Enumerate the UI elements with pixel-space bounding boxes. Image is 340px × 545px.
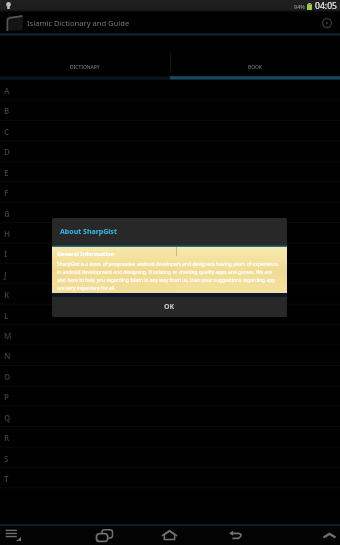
staticText: G [4, 208, 10, 219]
staticText: F [4, 187, 9, 198]
button[interactable]: DICTIONARY [0, 36, 170, 80]
button[interactable]: BOOK [170, 36, 340, 80]
button[interactable]: OK [144, 299, 195, 315]
staticText: General Information [57, 250, 115, 258]
button[interactable]: Q [0, 407, 340, 427]
staticText: A [4, 85, 10, 96]
staticText: BOOK [248, 64, 262, 71]
staticText: M [4, 330, 12, 341]
button[interactable]: I [0, 243, 340, 263]
button[interactable]: S [0, 448, 340, 468]
staticText: C [4, 126, 10, 137]
staticText: K [4, 289, 10, 300]
button[interactable]: About [320, 16, 333, 29]
staticText: N [4, 350, 11, 361]
staticText: S [4, 453, 9, 464]
staticText: T [4, 473, 9, 484]
button[interactable]: Home [160, 525, 179, 544]
staticText: OK [164, 302, 175, 312]
staticText: J [4, 269, 7, 280]
staticText: O [4, 371, 11, 382]
staticText: 94% [294, 3, 305, 10]
staticText: Q [4, 412, 11, 423]
button[interactable]: Expand [321, 527, 338, 544]
staticText: L [4, 310, 9, 321]
staticText: R [4, 432, 10, 443]
staticText: Islamic Dictionary and Guide [27, 18, 130, 28]
staticText: P [4, 391, 9, 402]
staticText: I [4, 248, 8, 259]
staticText: SharpGist is a team of progressive andro… [57, 261, 281, 292]
button[interactable]: Back [227, 525, 246, 544]
button[interactable]: L [0, 305, 340, 325]
staticText: 04:05 [315, 0, 337, 12]
staticText: D [4, 146, 10, 157]
staticText: B [4, 105, 10, 116]
staticText: H [4, 228, 11, 239]
button[interactable]: H [0, 223, 340, 243]
button[interactable]: G [0, 203, 340, 223]
staticText: About SharpGist [60, 227, 117, 237]
button[interactable]: Recent apps [95, 525, 114, 544]
staticText: E [4, 167, 9, 178]
button[interactable]: Menu [4, 525, 23, 544]
staticText: DICTIONARY [70, 64, 100, 71]
button[interactable]: K [0, 284, 340, 304]
button[interactable]: J [0, 264, 340, 284]
button[interactable]: E [0, 162, 340, 182]
